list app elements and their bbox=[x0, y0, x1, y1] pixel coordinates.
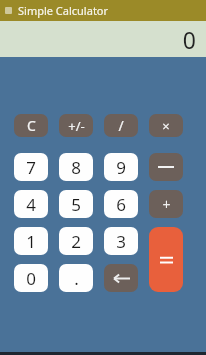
staticText: 0 bbox=[26, 267, 36, 290]
staticText: 7 bbox=[26, 156, 36, 179]
staticText: 9 bbox=[116, 156, 126, 179]
button[interactable]: Minus bbox=[149, 153, 183, 181]
staticText: × bbox=[162, 117, 170, 135]
button[interactable]: 0 bbox=[14, 264, 48, 292]
button[interactable]: Equals bbox=[149, 227, 183, 292]
staticText: C bbox=[27, 116, 36, 135]
staticText: Simple Calculator bbox=[18, 3, 109, 18]
button[interactable]: 1 bbox=[14, 227, 48, 255]
button[interactable]: 5 bbox=[59, 190, 93, 218]
staticText: + bbox=[162, 195, 171, 214]
staticText: 4 bbox=[26, 193, 36, 216]
button[interactable]: 2 bbox=[59, 227, 93, 255]
button[interactable]: + bbox=[149, 190, 183, 218]
button[interactable]: 4 bbox=[14, 190, 48, 218]
button[interactable]: Backspace bbox=[104, 264, 138, 292]
button[interactable]: 6 bbox=[104, 190, 138, 218]
button[interactable]: C bbox=[14, 114, 48, 137]
button[interactable]: / bbox=[104, 114, 138, 137]
staticText: +/- bbox=[68, 117, 85, 135]
button[interactable]: 3 bbox=[104, 227, 138, 255]
staticText: 8 bbox=[71, 156, 81, 179]
staticText: 5 bbox=[71, 193, 81, 216]
staticText: 2 bbox=[71, 230, 81, 253]
button[interactable]: . bbox=[59, 264, 93, 292]
staticText: . bbox=[74, 267, 79, 290]
staticText: 0 bbox=[182, 24, 196, 55]
staticText: 1 bbox=[26, 230, 36, 253]
staticText: / bbox=[118, 116, 124, 135]
button[interactable]: 8 bbox=[59, 153, 93, 181]
button[interactable]: 9 bbox=[104, 153, 138, 181]
button[interactable]: +/- bbox=[59, 114, 93, 137]
staticText: 6 bbox=[116, 193, 126, 216]
button[interactable]: × bbox=[149, 114, 183, 137]
button[interactable]: 7 bbox=[14, 153, 48, 181]
staticText: 3 bbox=[116, 230, 126, 253]
button[interactable]: App icon bbox=[5, 7, 12, 14]
